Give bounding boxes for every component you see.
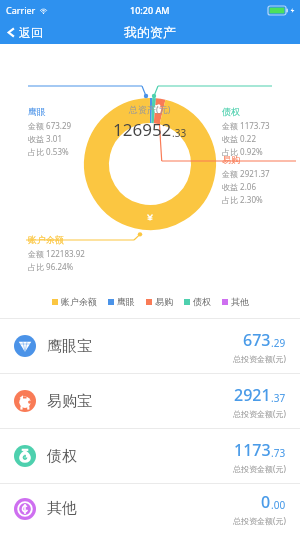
staticText: 账户余额 bbox=[61, 296, 97, 307]
button[interactable]: 债权 bbox=[0, 429, 300, 483]
staticText: 占比 96.24% bbox=[28, 261, 74, 272]
staticText: 总投资金额(元) bbox=[233, 353, 286, 364]
staticText: 总投资金额(元) bbox=[233, 408, 286, 419]
staticText: 其他 bbox=[47, 499, 77, 518]
staticText: 占比 0.53% bbox=[28, 146, 69, 157]
staticText: 易购 bbox=[222, 154, 240, 165]
staticText: 鹰眼宝 bbox=[47, 337, 92, 356]
staticText: 易购宝 bbox=[47, 392, 92, 411]
staticText: 鹰眼 bbox=[117, 296, 135, 307]
button[interactable]: 其他 bbox=[0, 484, 300, 533]
staticText: .73 bbox=[271, 446, 286, 460]
staticText: 其他 bbox=[231, 296, 249, 307]
staticText: 收益 0.22 bbox=[222, 133, 256, 144]
staticText: 收益 3.01 bbox=[28, 133, 62, 144]
staticText: 金额 1173.73 bbox=[222, 120, 270, 131]
staticText: 债权 bbox=[47, 447, 77, 466]
staticText: 债权 bbox=[222, 106, 240, 117]
staticText: .37 bbox=[271, 391, 286, 405]
staticText: 10:20 AM bbox=[130, 4, 170, 16]
staticText: 债权 bbox=[193, 296, 211, 307]
staticText: 金额 122183.92 bbox=[28, 248, 85, 259]
staticText: 返回 bbox=[19, 25, 43, 40]
button[interactable]: 鹰眼宝 bbox=[0, 319, 300, 373]
staticText: 占比 0.92% bbox=[222, 146, 263, 157]
staticText: 我的资产 bbox=[124, 24, 176, 40]
staticText: 鹰眼 bbox=[28, 106, 46, 117]
staticText: 易购 bbox=[155, 296, 173, 307]
staticText: 0 bbox=[261, 491, 271, 513]
staticText: 占比 2.30% bbox=[222, 194, 263, 205]
button[interactable]: 返回 bbox=[0, 23, 51, 42]
staticText: 总投资金额(元) bbox=[233, 463, 286, 474]
staticText: Carrier bbox=[6, 4, 36, 16]
staticText: .00 bbox=[271, 498, 286, 512]
staticText: 金额 673.29 bbox=[28, 120, 72, 131]
staticText: 总投资金额(元) bbox=[233, 515, 286, 526]
staticText: 账户余额 bbox=[28, 234, 64, 245]
staticText: 126952 bbox=[113, 118, 172, 141]
staticText: 收益 2.06 bbox=[222, 181, 256, 192]
staticText: 1173 bbox=[234, 439, 271, 461]
staticText: 673 bbox=[243, 329, 271, 351]
staticText: 金额 2921.37 bbox=[222, 168, 270, 179]
staticText: 总资产(元) bbox=[129, 103, 171, 115]
staticText: .29 bbox=[271, 336, 286, 350]
staticText: .33 bbox=[172, 126, 187, 140]
staticText: 2921 bbox=[234, 384, 271, 406]
button[interactable]: 易购宝 bbox=[0, 374, 300, 428]
